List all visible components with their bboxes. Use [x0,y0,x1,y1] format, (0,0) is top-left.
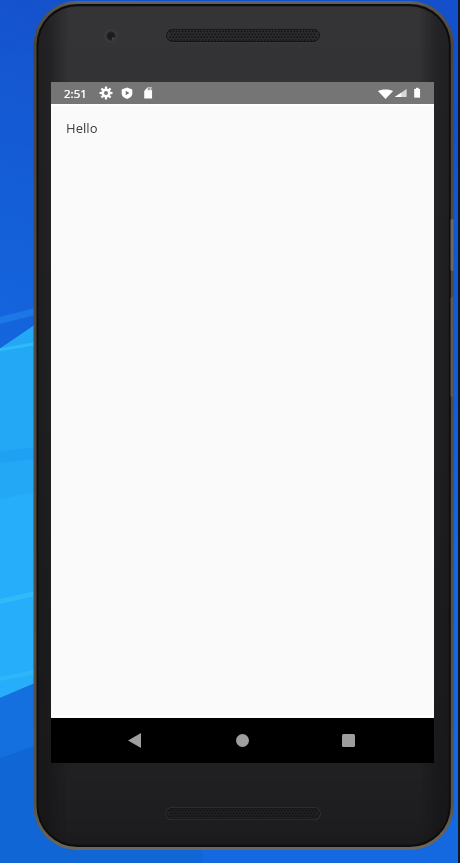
staticText: Hello [66,119,98,137]
staticText: 2:51 [64,86,87,102]
button[interactable]: Back [107,718,161,763]
button[interactable]: Home [215,718,269,763]
button[interactable]: Recent apps [321,718,375,763]
